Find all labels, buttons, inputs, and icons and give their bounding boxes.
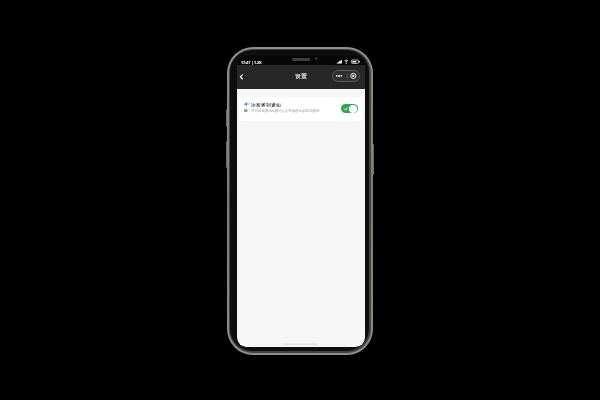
button[interactable]: [237, 69, 251, 87]
button[interactable]: [341, 104, 358, 113]
staticText: 设置: [295, 73, 308, 80]
button[interactable]: [332, 70, 346, 82]
staticText: 17:47 | 1.2K: [241, 60, 262, 65]
staticText: 访客签到通知: [251, 102, 281, 107]
staticText: 开启后将通过此微信公众号接收未读签到通知!: [251, 108, 320, 113]
button[interactable]: [239, 97, 363, 121]
button[interactable]: [346, 70, 360, 82]
